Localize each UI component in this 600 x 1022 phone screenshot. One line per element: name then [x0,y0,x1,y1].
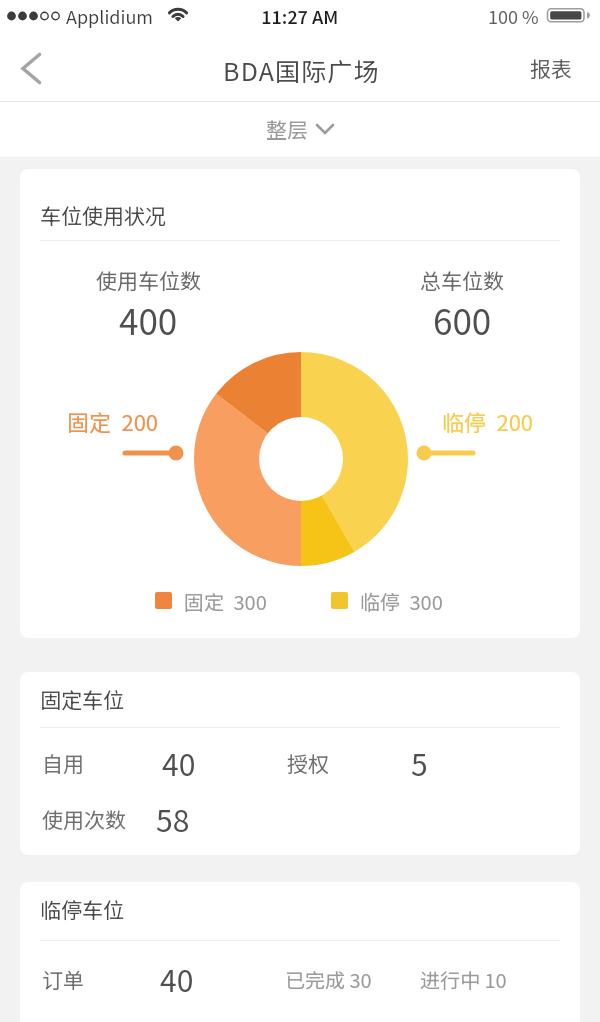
staticText: 固定 200 [67,405,159,437]
staticText: 自用 [42,748,84,778]
staticText: 进行中 10 [420,965,507,994]
staticText: 固定车位 [40,684,124,714]
staticText: 临停 200 [442,405,534,437]
staticText: 600 [433,294,492,345]
staticText: 11:27 AM [261,3,339,29]
staticText: 使用车位数 [96,265,201,295]
button[interactable]: 报表 [516,44,586,92]
staticText: 400 [119,294,178,345]
staticText: Applidium [66,3,154,29]
button[interactable] [8,44,56,92]
staticText: 已完成 30 [285,965,372,994]
staticText: 40 [160,957,194,1000]
button[interactable]: 整层 [220,102,380,156]
staticText: 固定 300 [184,587,267,616]
staticText: 订单 [42,964,84,994]
staticText: 整层 [266,114,308,144]
staticText: 临停车位 [40,894,124,924]
staticText: 总车位数 [420,265,504,295]
staticText: 使用次数 [42,804,126,834]
staticText: 100 % [488,3,539,29]
staticText: 58 [156,797,190,840]
staticText: 报表 [530,53,572,83]
staticText: 授权 [287,748,329,778]
staticText: 车位使用状况 [40,200,166,230]
staticText: 临停 300 [360,587,443,616]
staticText: 40 [162,741,196,784]
staticText: 5 [411,741,428,784]
staticText: BDA国际广场 [223,52,380,88]
